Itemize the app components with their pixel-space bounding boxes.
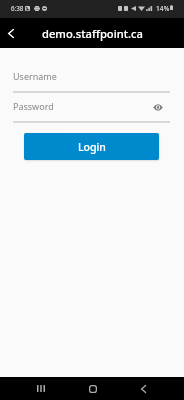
button[interactable]: Recent apps <box>25 377 56 400</box>
button[interactable]: Login <box>24 133 159 160</box>
button[interactable]: Show password <box>146 95 170 119</box>
staticText: Username <box>13 70 57 82</box>
button[interactable]: Password <box>13 94 170 123</box>
button[interactable]: Home <box>77 377 108 400</box>
button[interactable]: Back <box>0 18 22 48</box>
staticText: Login <box>78 140 106 154</box>
button[interactable]: Back <box>128 377 159 400</box>
staticText: Password <box>13 100 54 112</box>
staticText: 14% <box>156 4 170 13</box>
staticText: 6:38 <box>11 4 24 12</box>
button[interactable]: Username <box>13 64 170 93</box>
staticText: demo.staffpoint.ca <box>42 26 143 41</box>
